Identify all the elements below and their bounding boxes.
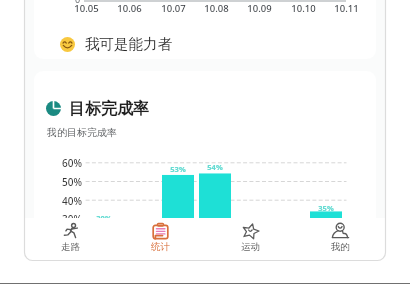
staticText: 50% xyxy=(62,175,82,189)
staticText: 0 xyxy=(75,0,81,5)
button[interactable]: 我的 xyxy=(295,218,385,260)
staticText: 走路 xyxy=(61,241,80,253)
staticText: 统计 xyxy=(151,241,170,253)
staticText: 我可是能力者 xyxy=(85,35,172,53)
staticText: 10.08 xyxy=(204,2,229,15)
staticText: 10.05 xyxy=(74,2,99,15)
button[interactable]: 运动 xyxy=(205,218,295,260)
staticText: 35% xyxy=(318,203,334,213)
staticText: 60% xyxy=(62,156,82,170)
staticText: 30% xyxy=(62,212,82,226)
button[interactable]: 统计 xyxy=(115,218,205,260)
staticText: 54% xyxy=(207,162,223,172)
staticText: 10.06 xyxy=(117,2,142,15)
staticText: 我的 xyxy=(331,241,350,253)
staticText: 10.10 xyxy=(291,2,316,15)
staticText: 运动 xyxy=(241,241,260,253)
staticText: 40% xyxy=(62,194,82,208)
staticText: 53% xyxy=(170,164,186,174)
staticText: 目标完成率 xyxy=(69,99,149,119)
staticText: 10.11 xyxy=(334,2,359,15)
staticText: 我的目标完成率 xyxy=(47,126,117,139)
staticText: 30% xyxy=(96,213,112,223)
staticText: 10.07 xyxy=(161,2,186,15)
button[interactable]: 走路 xyxy=(25,218,115,260)
staticText: 10.09 xyxy=(247,2,272,15)
